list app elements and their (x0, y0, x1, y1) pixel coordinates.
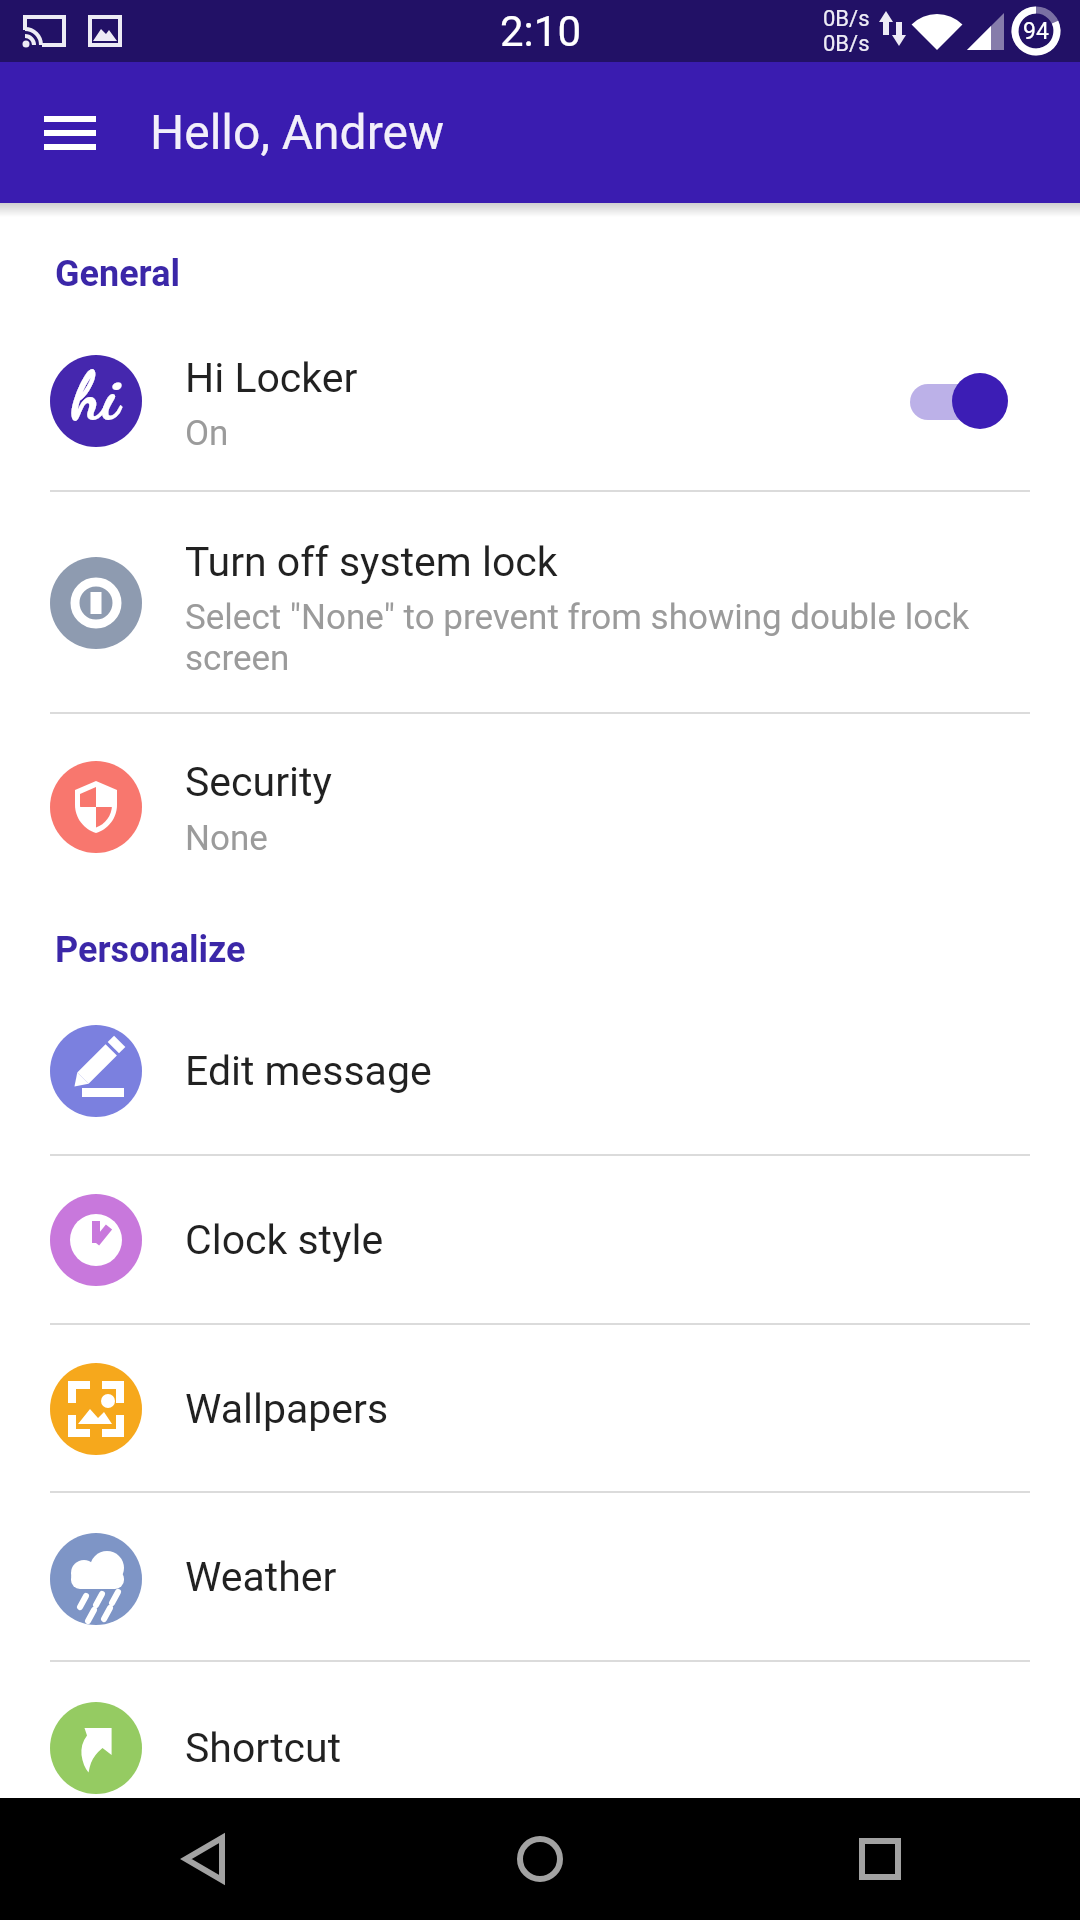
staticText: Hi Locker (185, 354, 358, 402)
staticText: Clock style (185, 1216, 384, 1264)
button[interactable]: Turn off system lock (0, 492, 1080, 713)
button[interactable]: Weather (0, 1493, 1080, 1660)
staticText: 0B/s (823, 31, 870, 55)
staticText: Shortcut (185, 1724, 342, 1772)
staticText: Select "None" to prevent from showing do… (185, 597, 970, 678)
button[interactable]: Clock style (0, 1156, 1080, 1323)
button[interactable]: hi (0, 311, 1080, 491)
button[interactable]: Shortcut (0, 1662, 1080, 1798)
button[interactable]: Security (0, 714, 1080, 900)
staticText: On (185, 413, 229, 454)
button[interactable] (800, 1808, 960, 1910)
staticText: 0B/s (823, 6, 870, 30)
staticText: Wallpapers (185, 1385, 389, 1433)
staticText: Security (185, 758, 332, 806)
staticText: None (185, 818, 268, 859)
staticText: Hello, Andrew (150, 104, 444, 160)
staticText: 94 (1023, 18, 1049, 45)
staticText: 2:10 (500, 7, 581, 56)
button[interactable]: Wallpapers (0, 1325, 1080, 1492)
button[interactable] (460, 1808, 620, 1910)
staticText: hi (72, 356, 120, 435)
staticText: Edit message (185, 1047, 432, 1095)
staticText: Weather (185, 1553, 337, 1601)
staticText: Personalize (55, 929, 246, 971)
button[interactable]: Edit message (0, 987, 1080, 1155)
staticText: Turn off system lock (185, 538, 558, 586)
staticText: General (55, 253, 181, 295)
button[interactable] (30, 103, 110, 163)
button[interactable] (140, 1808, 300, 1910)
